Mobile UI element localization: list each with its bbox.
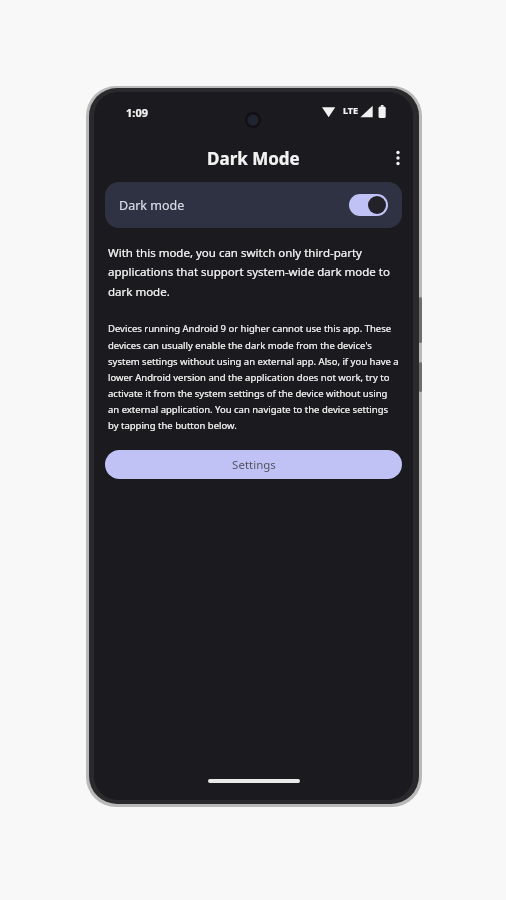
staticText: LTE <box>343 104 359 116</box>
button[interactable]: Settings <box>105 450 402 479</box>
staticText: 1:09 <box>126 105 148 120</box>
button[interactable]: Dark mode toggle <box>349 194 388 216</box>
staticText: With this mode, you can switch only thir… <box>108 245 399 300</box>
staticText: Devices running Android 9 or higher cann… <box>108 322 399 431</box>
button[interactable]: More options <box>383 137 413 179</box>
staticText: Dark Mode <box>207 147 300 170</box>
button[interactable]: Dark mode <box>105 182 402 228</box>
staticText: Dark mode <box>119 197 185 214</box>
staticText: Settings <box>232 457 276 473</box>
